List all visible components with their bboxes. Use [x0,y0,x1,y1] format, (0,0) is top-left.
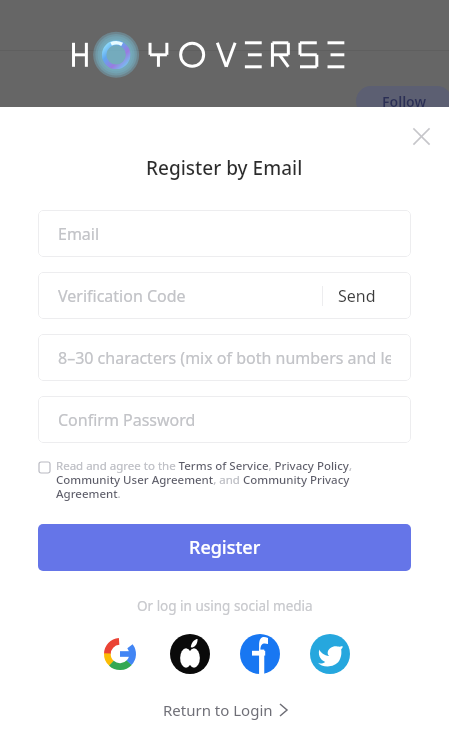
staticText: Return to Login [163,700,273,720]
staticText: Follow [382,92,427,111]
button[interactable]: Sign in with Twitter [310,634,350,674]
staticText: Read and agree to the Terms of Service, … [56,458,413,501]
staticText: Email [58,223,100,245]
button[interactable]: Sign in with Facebook [240,634,280,674]
button[interactable]: Read and agree to the Terms of Service, … [39,458,413,501]
button[interactable]: Confirm Password [38,396,411,443]
staticText: Confirm Password [58,409,196,431]
button[interactable]: Return to Login [0,700,449,720]
staticText: Register [189,535,261,560]
staticText: Register by Email [146,155,303,181]
staticText: Or log in using social media [137,597,313,615]
staticText: 8–30 characters (mix of both numbers and… [58,347,391,369]
button[interactable]: Close [405,120,437,152]
button[interactable]: Sign in with Apple [170,634,210,674]
staticText: Send [338,285,376,307]
staticText: Verification Code [58,285,186,307]
button[interactable]: Email [38,210,411,257]
button[interactable]: Register [38,524,411,571]
button[interactable]: 8–30 characters (mix of both numbers and… [38,334,411,381]
button[interactable]: Send [323,272,391,319]
button[interactable]: Verification Code [38,272,411,319]
button[interactable]: Follow [356,86,449,116]
button[interactable]: Sign in with Google [100,634,140,674]
